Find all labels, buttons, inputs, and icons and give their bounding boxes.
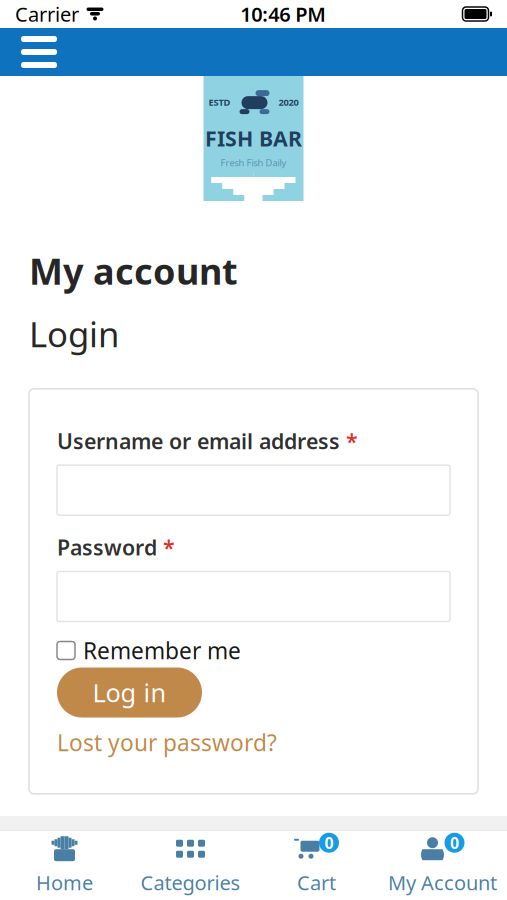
staticText: My account [29,247,238,295]
staticText: Password [57,533,157,561]
button[interactable]: Lost your password? [57,729,277,755]
staticText: 2020 [278,96,298,108]
button[interactable]: 0 [253,831,379,899]
button[interactable]: Categories [127,831,253,899]
staticText: Lost your password? [57,727,277,758]
staticText: Home [36,869,93,896]
button[interactable]: Remember me [57,636,450,664]
staticText: Cart [297,869,336,896]
button[interactable]: Log in [57,667,202,717]
button[interactable]: Home [1,831,127,899]
staticText: Categories [140,869,240,896]
button[interactable]: 0 [379,831,505,899]
staticText: My Account [388,869,497,896]
button[interactable]: Menu [11,28,67,76]
staticText: Remember me [83,635,241,666]
staticText: Login [29,311,119,357]
staticText: 0 [324,832,333,853]
staticText: Log in [92,676,166,709]
staticText: Carrier [15,1,79,27]
staticText: Username or email address [57,427,340,455]
staticText: 0 [450,832,459,853]
staticText: * [340,427,358,455]
staticText: FISH BAR [205,124,302,152]
staticText: * [157,533,175,561]
staticText: ESTD [208,96,230,108]
staticText: 10:46 PM [240,1,326,27]
staticText: Fresh Fish Daily [220,156,286,169]
